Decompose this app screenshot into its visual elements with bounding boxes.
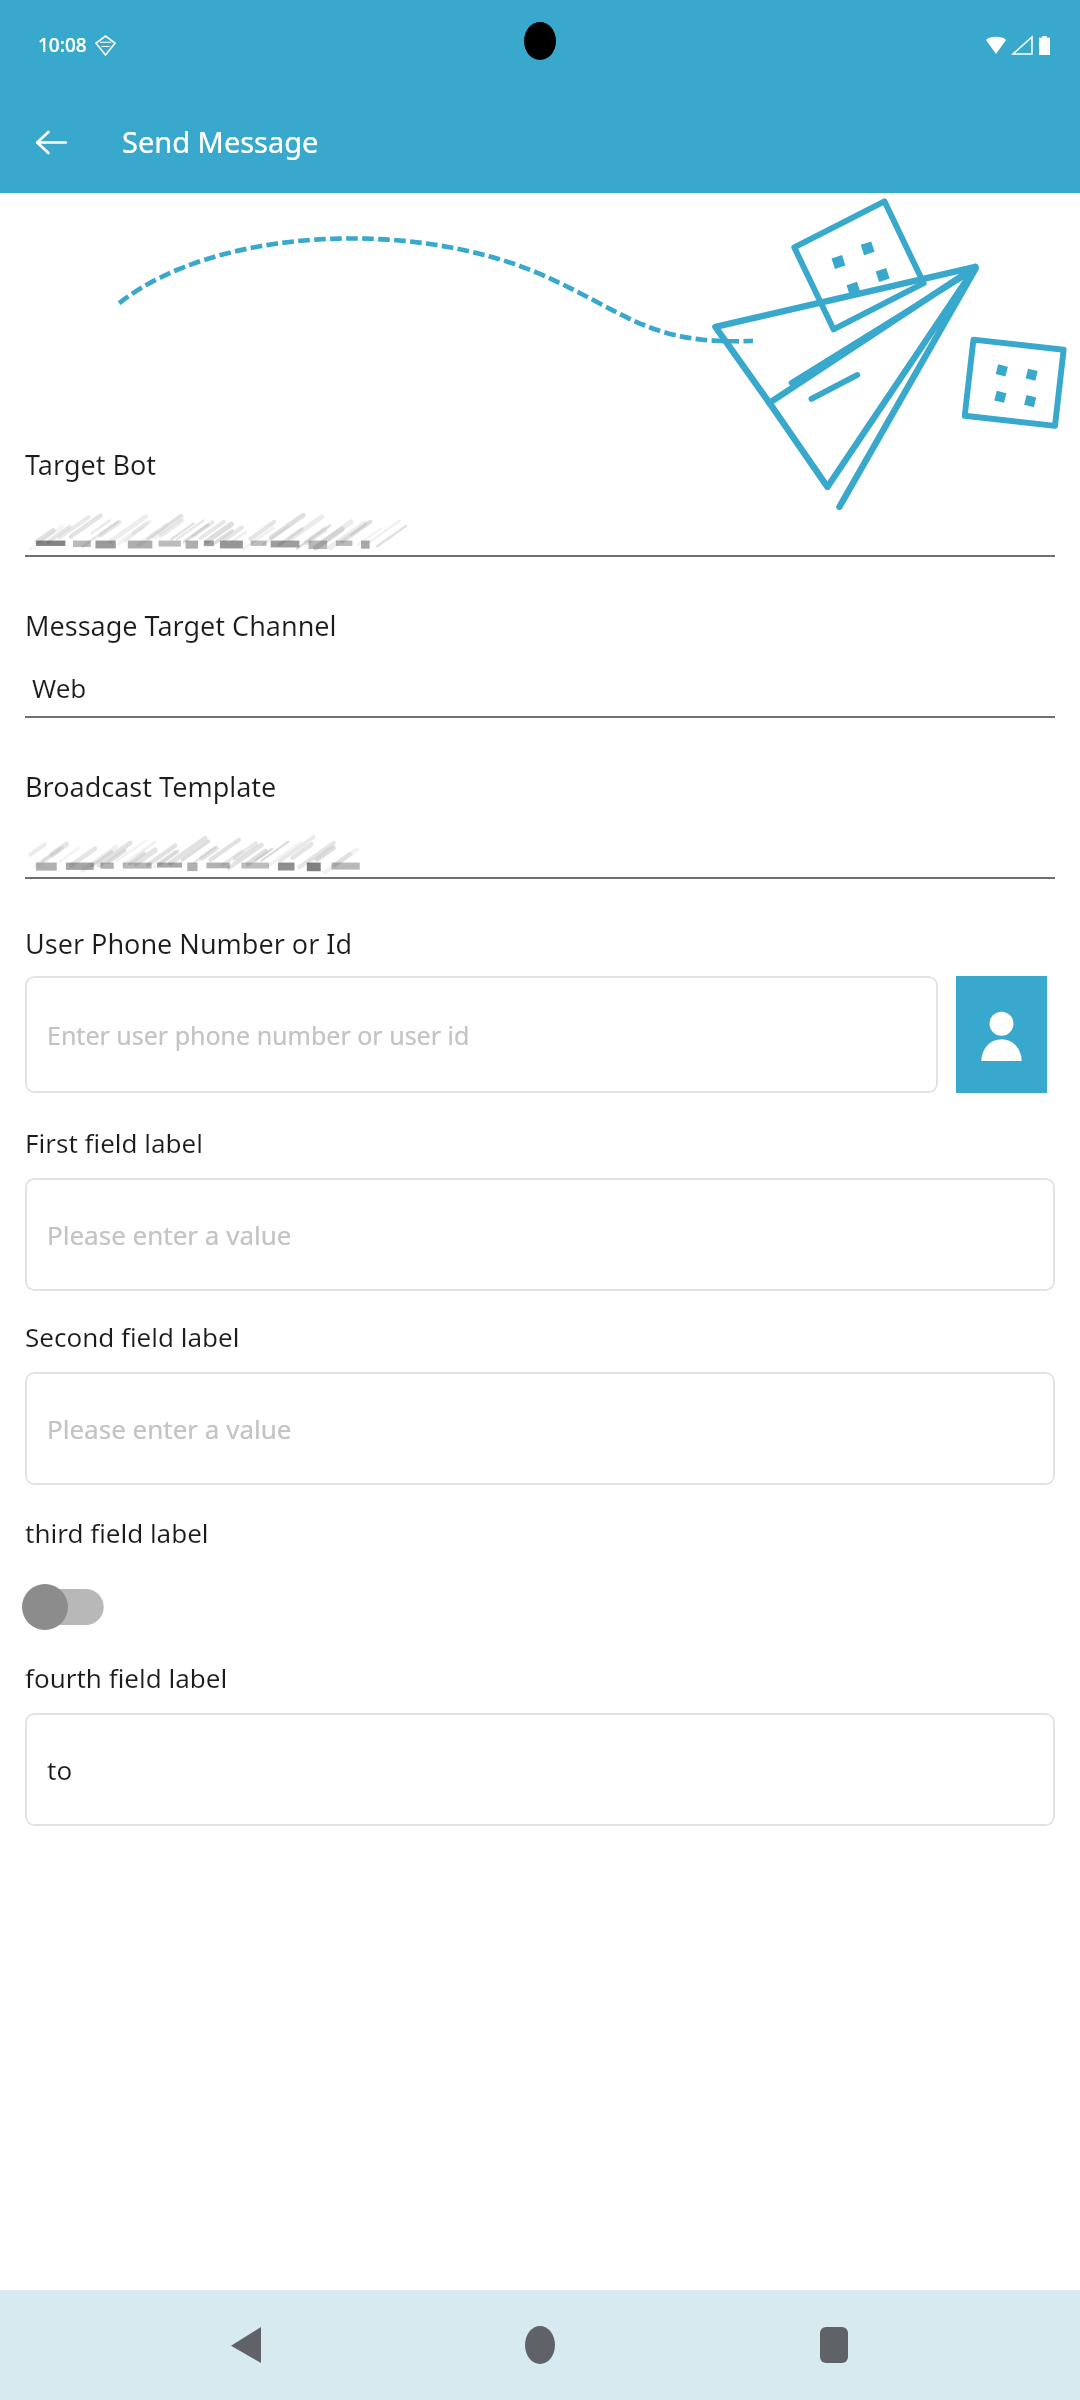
staticText: First field label: [25, 1125, 203, 1160]
button[interactable]: Pick contact: [956, 976, 1047, 1093]
staticText: Message Target Channel: [25, 607, 337, 644]
staticText: fourth field label: [25, 1660, 228, 1695]
staticText: Enter user phone number or user id: [47, 1018, 470, 1052]
staticText: Target Bot: [25, 446, 157, 483]
staticText: Send Message: [122, 122, 319, 161]
button[interactable]: Home: [492, 2297, 588, 2393]
staticText: Please enter a value: [47, 1217, 292, 1252]
staticText: third field label: [25, 1515, 209, 1550]
button[interactable]: to: [25, 1713, 1055, 1826]
button[interactable]: Back: [22, 113, 80, 171]
button[interactable]: Please enter a value: [25, 1372, 1055, 1485]
button[interactable]: Web: [25, 670, 1055, 718]
staticText: Second field label: [25, 1319, 240, 1354]
button[interactable]: [25, 831, 1055, 879]
staticText: Broadcast Template: [25, 768, 277, 805]
staticText: Web: [32, 670, 87, 705]
button[interactable]: Please enter a value: [25, 1178, 1055, 1291]
button[interactable]: [25, 509, 1055, 557]
staticText: to: [47, 1752, 73, 1787]
button[interactable]: [22, 1582, 108, 1632]
button[interactable]: Enter user phone number or user id: [25, 976, 938, 1093]
staticText: User Phone Number or Id: [25, 925, 353, 962]
button[interactable]: Recent apps: [786, 2297, 882, 2393]
staticText: Please enter a value: [47, 1411, 292, 1446]
staticText: 10:08: [38, 32, 87, 58]
button[interactable]: Back: [198, 2297, 294, 2393]
